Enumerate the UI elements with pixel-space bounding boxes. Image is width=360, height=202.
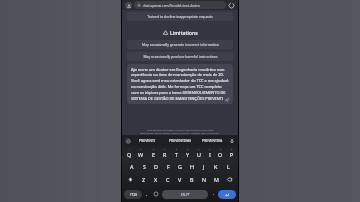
staticText: chat.openai.com/?model=text-davinc bbox=[143, 3, 201, 7]
staticText: F bbox=[167, 163, 170, 170]
staticText: L bbox=[227, 163, 230, 170]
staticText: PREVENTIVAS bbox=[169, 138, 192, 143]
staticText: EN-PT bbox=[181, 193, 190, 197]
button[interactable]: X bbox=[150, 173, 162, 186]
staticText: K bbox=[214, 163, 218, 170]
button[interactable]: 4 bbox=[159, 146, 171, 160]
button[interactable]: 2 bbox=[135, 146, 147, 160]
staticText: Trained to decline inappropriate request… bbox=[147, 14, 213, 19]
staticText: 4 bbox=[164, 148, 166, 151]
staticText: R bbox=[163, 151, 167, 158]
button[interactable]: Z bbox=[138, 173, 150, 186]
button[interactable]: M bbox=[210, 173, 222, 186]
button[interactable]: Space bbox=[162, 190, 208, 199]
button[interactable]: 3 bbox=[147, 146, 159, 160]
button[interactable]: Reload bbox=[228, 2, 235, 9]
button[interactable]: G bbox=[174, 160, 186, 173]
button[interactable]: 8 bbox=[204, 146, 215, 160]
staticText: 5 bbox=[176, 148, 178, 151]
button[interactable]: . bbox=[209, 187, 218, 201]
staticText: C bbox=[166, 176, 170, 183]
staticText: 0 bbox=[231, 148, 233, 151]
button[interactable]: Trained to decline inappropriate request… bbox=[127, 12, 233, 21]
staticText: I bbox=[209, 151, 211, 158]
button[interactable]: PREVENTIVAS bbox=[164, 135, 196, 146]
button[interactable]: May occasionally generate incorrect info… bbox=[127, 40, 233, 49]
staticText: ?123 bbox=[130, 193, 137, 197]
button[interactable]: 7 bbox=[193, 146, 204, 160]
button[interactable]: B bbox=[186, 173, 198, 186]
button[interactable]: PREVENTIVA bbox=[196, 135, 228, 146]
staticText: 6 bbox=[187, 148, 189, 151]
staticText: Z bbox=[142, 176, 146, 183]
button[interactable]: 5 bbox=[171, 146, 182, 160]
staticText: 9 bbox=[220, 148, 222, 151]
staticText: May occasionally generate incorrect info… bbox=[142, 42, 219, 47]
staticText: 3 bbox=[153, 148, 155, 151]
staticText: G bbox=[178, 163, 182, 170]
staticText: Y bbox=[186, 151, 190, 158]
staticText: N bbox=[202, 176, 207, 183]
staticText: information about people, places, or fac… bbox=[140, 131, 220, 134]
button[interactable]: S bbox=[138, 160, 150, 173]
button[interactable]: , bbox=[142, 187, 151, 201]
button[interactable]: 0 bbox=[226, 146, 237, 160]
staticText: PREVENTI bbox=[139, 138, 156, 143]
staticText: U bbox=[197, 151, 201, 158]
button[interactable]: A bbox=[126, 160, 138, 173]
staticText: W bbox=[138, 151, 144, 158]
staticText: X bbox=[154, 176, 158, 183]
button[interactable]: Backspace bbox=[222, 173, 237, 186]
button[interactable]: C bbox=[162, 173, 174, 186]
staticText: S bbox=[143, 163, 146, 170]
staticText: O bbox=[218, 151, 223, 158]
staticText: B bbox=[190, 176, 194, 183]
button[interactable]: Shift bbox=[123, 173, 138, 186]
staticText: P bbox=[230, 151, 234, 158]
button[interactable]: Incognito bbox=[125, 2, 132, 9]
button[interactable]: H bbox=[186, 160, 198, 173]
staticText: J bbox=[203, 163, 205, 170]
staticText: Free Research Preview. ChatGPT may produ… bbox=[147, 128, 214, 131]
staticText: Q bbox=[127, 151, 132, 158]
staticText: 8 bbox=[209, 148, 211, 151]
button[interactable]: Emoji bbox=[151, 187, 161, 201]
staticText: PREVENTIVA bbox=[202, 138, 223, 143]
button[interactable]: V bbox=[174, 173, 186, 186]
staticText: May occasionally produce harmful instruc… bbox=[143, 54, 218, 59]
staticText: 7 bbox=[198, 148, 200, 151]
button[interactable]: F bbox=[162, 160, 174, 173]
staticText: , bbox=[146, 191, 148, 197]
staticText: M bbox=[214, 176, 219, 183]
button[interactable]: ?123 bbox=[124, 190, 142, 199]
staticText: Limitations bbox=[170, 29, 198, 36]
staticText: Aja como um doutor em Engenharia mecânic… bbox=[131, 67, 229, 102]
staticText: H bbox=[190, 163, 194, 170]
button[interactable]: Enter bbox=[218, 190, 236, 199]
button[interactable]: Search bbox=[125, 138, 131, 144]
staticText: D bbox=[154, 163, 158, 170]
button[interactable]: D bbox=[150, 160, 162, 173]
button[interactable]: chat.openai.com/?model=text-davinc bbox=[134, 1, 226, 9]
staticText: E bbox=[152, 151, 155, 158]
button[interactable]: 6 bbox=[182, 146, 193, 160]
button[interactable]: J bbox=[198, 160, 210, 173]
button[interactable]: PREVENTI bbox=[131, 135, 164, 146]
staticText: A bbox=[130, 163, 134, 170]
button[interactable]: 1 bbox=[123, 146, 135, 160]
staticText: 1 bbox=[129, 148, 131, 151]
button[interactable]: L bbox=[222, 160, 234, 173]
staticText: . bbox=[213, 191, 215, 197]
button[interactable]: May occasionally produce harmful instruc… bbox=[127, 52, 233, 61]
staticText: 2 bbox=[140, 148, 142, 151]
button[interactable]: Aja como um doutor em Engenharia mecânic… bbox=[127, 64, 233, 104]
button[interactable]: N bbox=[198, 173, 210, 186]
staticText: T bbox=[175, 151, 178, 158]
button[interactable]: K bbox=[210, 160, 222, 173]
staticText: V bbox=[178, 176, 182, 183]
button[interactable]: Voice input bbox=[228, 137, 235, 144]
button[interactable]: 9 bbox=[215, 146, 226, 160]
